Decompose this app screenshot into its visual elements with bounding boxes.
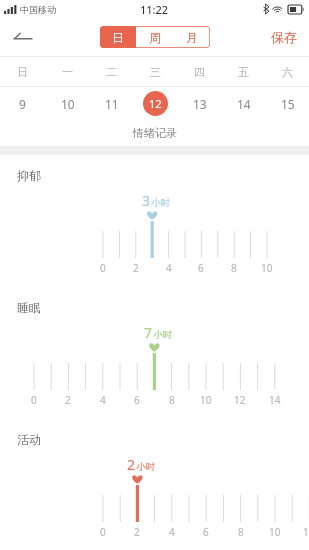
button[interactable]: 日 [100,26,136,48]
staticText: 六 [282,65,293,79]
staticText: 一 [62,65,73,79]
staticText: 五 [238,65,249,79]
staticText: 8 [238,525,244,539]
staticText: 小时 [153,329,172,341]
staticText: 睡眠 [17,300,41,315]
staticText: 日 [112,30,124,45]
staticText: 10 [261,261,273,275]
staticText: 四 [194,65,205,79]
staticText: 15 [281,96,295,112]
staticText: 12 [303,525,309,539]
staticText: 0 [100,525,106,539]
staticText: 周 [149,30,161,45]
staticText: 三 [150,65,161,79]
staticText: 2 [127,455,136,474]
button[interactable]: Back [5,20,39,54]
staticText: 7 [144,323,153,342]
staticText: 小时 [151,197,170,209]
button[interactable]: 13 [187,91,212,116]
staticText: 13 [193,96,207,112]
button[interactable]: 11 [99,91,124,116]
staticText: 月 [186,30,198,45]
staticText: 4 [169,525,175,539]
button[interactable]: 周 [136,26,173,48]
staticText: 8 [231,261,237,275]
staticText: 2 [133,261,139,275]
button[interactable]: 14 [231,91,256,116]
button[interactable]: 12 [143,91,168,116]
staticText: 14 [269,393,281,407]
button[interactable]: 保存 [265,22,303,52]
staticText: 0 [31,393,37,407]
staticText: 6 [203,525,209,539]
button[interactable]: 9 [10,91,35,116]
staticText: 情绪记录 [133,126,177,140]
staticText: 活动 [17,432,41,447]
button[interactable]: 10 [55,91,80,116]
staticText: 10 [269,525,281,539]
staticText: 8 [169,393,175,407]
staticText: 中国移动 [20,4,56,15]
button[interactable]: 月 [173,26,210,48]
staticText: 2 [65,393,71,407]
staticText: 6 [198,261,204,275]
staticText: 日 [17,65,28,79]
staticText: 12 [149,96,162,111]
staticText: 0 [100,261,106,275]
staticText: 二 [106,65,117,79]
staticText: 12 [234,393,246,407]
staticText: 9 [19,96,26,112]
staticText: 保存 [271,29,297,45]
staticText: 4 [166,261,172,275]
staticText: 2 [134,525,140,539]
staticText: 小时 [136,461,155,473]
staticText: 11 [105,96,119,112]
staticText: 抑郁 [17,168,41,183]
staticText: 10 [61,96,75,112]
staticText: 6 [134,393,140,407]
staticText: 14 [237,96,251,112]
button[interactable]: 15 [275,91,300,116]
staticText: 11:22 [140,2,169,17]
staticText: 3 [142,191,151,210]
staticText: 10 [200,393,212,407]
staticText: 4 [100,393,106,407]
